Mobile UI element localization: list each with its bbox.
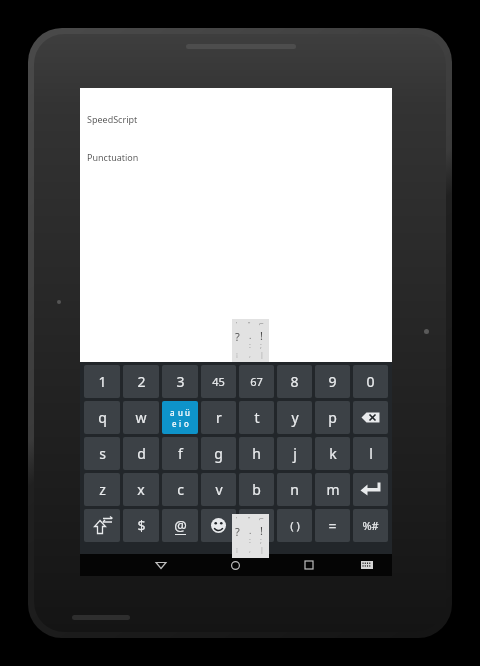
button[interactable]: Shift <box>84 509 120 542</box>
staticText: @ <box>174 516 187 535</box>
staticText: | <box>260 350 264 360</box>
staticText: ! <box>260 523 263 538</box>
button[interactable]: Emoji <box>201 509 236 542</box>
button[interactable]: a <box>162 401 198 434</box>
staticText: , <box>249 350 251 360</box>
button[interactable]: r <box>201 401 236 434</box>
button[interactable]: 45 <box>201 365 236 398</box>
staticText: " <box>248 515 251 523</box>
staticText: ¡ <box>236 545 238 555</box>
button[interactable]: p <box>315 401 350 434</box>
staticText: g <box>214 444 223 463</box>
button[interactable]: y <box>277 401 312 434</box>
staticText: : <box>249 341 251 351</box>
staticText: ! <box>260 328 263 343</box>
staticText: n <box>290 480 299 499</box>
staticText: z <box>99 480 106 499</box>
button[interactable]: = <box>315 509 350 542</box>
staticText: s <box>99 444 106 463</box>
staticText: ? <box>235 524 240 539</box>
staticText: e <box>172 418 177 429</box>
staticText: t <box>254 408 260 427</box>
staticText: l <box>369 444 373 463</box>
staticText: 0 <box>366 372 375 391</box>
staticText: 2 <box>137 372 146 391</box>
button[interactable]: 67 <box>239 365 274 398</box>
staticText: a <box>170 407 175 418</box>
button[interactable]: Home <box>224 554 246 576</box>
staticText: %# <box>362 518 379 533</box>
staticText: 67 <box>250 374 263 389</box>
staticText: ¡ <box>236 350 238 360</box>
button[interactable]: 0 <box>353 365 388 398</box>
staticText: u <box>178 407 183 418</box>
button[interactable]: m <box>315 473 350 506</box>
button[interactable]: g <box>201 437 236 470</box>
button[interactable]: 1 <box>84 365 120 398</box>
button[interactable]: x <box>123 473 159 506</box>
button[interactable]: t <box>239 401 274 434</box>
staticText: w <box>135 408 147 427</box>
button[interactable]: f <box>162 437 198 470</box>
staticText: . <box>249 524 252 536</box>
staticText: 8 <box>290 372 299 391</box>
staticText: ? <box>235 329 240 344</box>
staticText: v <box>215 480 223 499</box>
button[interactable]: 3 <box>162 365 198 398</box>
button[interactable]: s <box>84 437 120 470</box>
staticText: c <box>177 480 184 499</box>
button[interactable]: v <box>201 473 236 506</box>
button[interactable]: n <box>277 473 312 506</box>
staticText: " <box>248 320 251 328</box>
staticText: | <box>260 545 264 555</box>
staticText: . <box>249 329 252 341</box>
staticText: k <box>329 444 337 463</box>
button[interactable]: 8 <box>277 365 312 398</box>
button[interactable]: k <box>315 437 350 470</box>
staticText: ( ) <box>290 518 300 533</box>
button[interactable]: 2 <box>123 365 159 398</box>
button[interactable]: Back <box>150 554 172 576</box>
staticText: ; <box>260 341 262 351</box>
staticText: 45 <box>212 374 225 389</box>
button[interactable]: %# <box>353 509 388 542</box>
button[interactable]: l <box>353 437 388 470</box>
button[interactable]: $ <box>123 509 159 542</box>
staticText: 3 <box>176 372 185 391</box>
staticText: ü <box>185 407 190 418</box>
button[interactable]: h <box>239 437 274 470</box>
button[interactable]: @ <box>162 509 198 542</box>
button[interactable]: Keyboard <box>356 554 378 576</box>
button[interactable]: d <box>123 437 159 470</box>
staticText: d <box>137 444 146 463</box>
button[interactable]: q <box>84 401 120 434</box>
staticText: SpeedScript <box>87 113 138 125</box>
staticText: , <box>249 545 251 555</box>
staticText: : <box>249 536 251 546</box>
button[interactable]: w <box>123 401 159 434</box>
staticText: f <box>178 444 183 463</box>
button[interactable]: Backspace <box>353 401 388 434</box>
staticText: ; <box>260 536 262 546</box>
button[interactable] <box>239 509 274 542</box>
staticText: j <box>293 444 297 463</box>
button[interactable]: Recents <box>298 554 320 576</box>
staticText: 9 <box>328 372 337 391</box>
button[interactable]: ( ) <box>277 509 312 542</box>
staticText: h <box>252 444 261 463</box>
staticText: o <box>184 418 189 429</box>
button[interactable]: j <box>277 437 312 470</box>
staticText: 1 <box>98 372 107 391</box>
button[interactable]: b <box>239 473 274 506</box>
button[interactable]: Enter <box>353 473 388 506</box>
button[interactable]: c <box>162 473 198 506</box>
staticText: ' <box>236 320 238 328</box>
staticText: = <box>328 516 337 535</box>
staticText: y <box>291 408 299 427</box>
button[interactable]: z <box>84 473 120 506</box>
button[interactable]: 9 <box>315 365 350 398</box>
staticText: ⌐ <box>259 320 265 327</box>
staticText: Punctuation <box>87 151 139 163</box>
staticText: ⌐ <box>259 515 265 522</box>
staticText: m <box>326 480 340 499</box>
